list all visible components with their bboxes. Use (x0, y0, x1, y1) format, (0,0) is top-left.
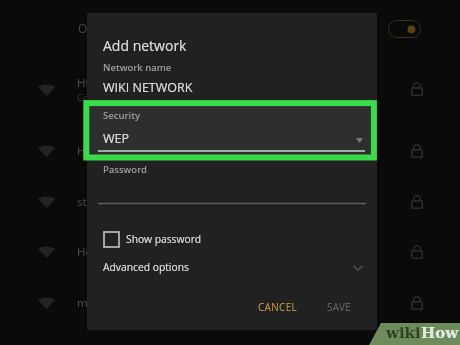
staticText: HUAWEI-5G (77, 75, 140, 91)
staticText: wiki (386, 324, 421, 342)
staticText: WIKI NETWORK (103, 79, 193, 96)
button[interactable] (0, 177, 460, 227)
staticText: Add network (103, 36, 187, 55)
button[interactable]: CANCEL (250, 296, 306, 318)
staticText: Security (103, 109, 141, 122)
staticText: Password (103, 163, 147, 176)
button[interactable]: Advanced options (87, 255, 377, 281)
button[interactable]: Security (87, 102, 377, 159)
staticText: mobile-ap (77, 295, 132, 311)
staticText: Advanced options (103, 260, 189, 274)
staticText: CANCEL (258, 300, 298, 314)
staticText: Connected (77, 91, 125, 104)
staticText: Hotel_Wifi (77, 143, 132, 159)
button[interactable] (0, 64, 460, 114)
button[interactable]: Show password (97, 226, 212, 252)
staticText: On (78, 20, 95, 36)
staticText: How (421, 324, 459, 342)
staticText: Network name (103, 61, 172, 74)
staticText: SAVE (327, 300, 352, 314)
button[interactable] (0, 126, 460, 176)
button[interactable]: Wi-Fi toggle (388, 20, 421, 38)
button[interactable]: SAVE (319, 296, 360, 318)
button[interactable] (0, 227, 460, 277)
staticText: Show password (126, 232, 202, 246)
staticText: Home-2.4 (77, 244, 130, 260)
staticText: starbucks (77, 194, 129, 210)
button[interactable] (0, 278, 460, 328)
staticText: WEP (103, 130, 130, 147)
